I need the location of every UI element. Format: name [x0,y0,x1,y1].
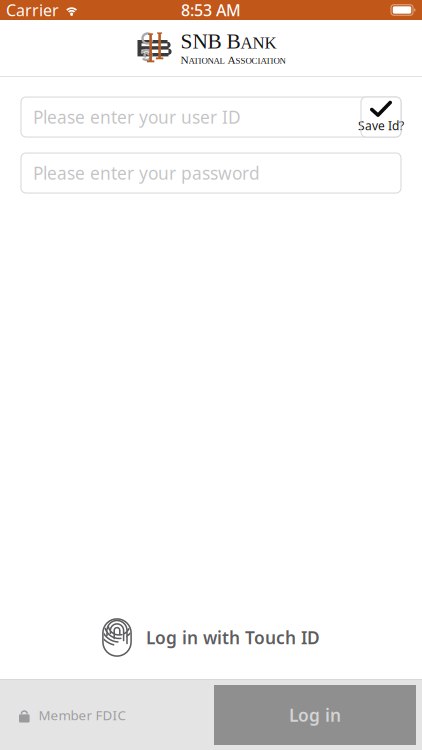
staticText: Please enter your user ID [33,105,241,128]
staticText: Carrier [6,0,59,21]
staticText: Member FDIC [39,706,126,724]
button[interactable]: Log in with Touch ID [102,618,320,657]
button[interactable]: Save Id? [361,97,401,137]
staticText: 8:53 AM [181,0,241,21]
staticText: Log in [289,703,341,726]
staticText: Please enter your password [33,161,260,184]
staticText: Save Id? [358,117,404,133]
staticText: NATIONAL ASSOCIATION [180,54,285,66]
button[interactable]: Log in [214,685,416,745]
staticText: Log in with Touch ID [146,626,320,649]
staticText: SNB BANK [180,30,276,53]
